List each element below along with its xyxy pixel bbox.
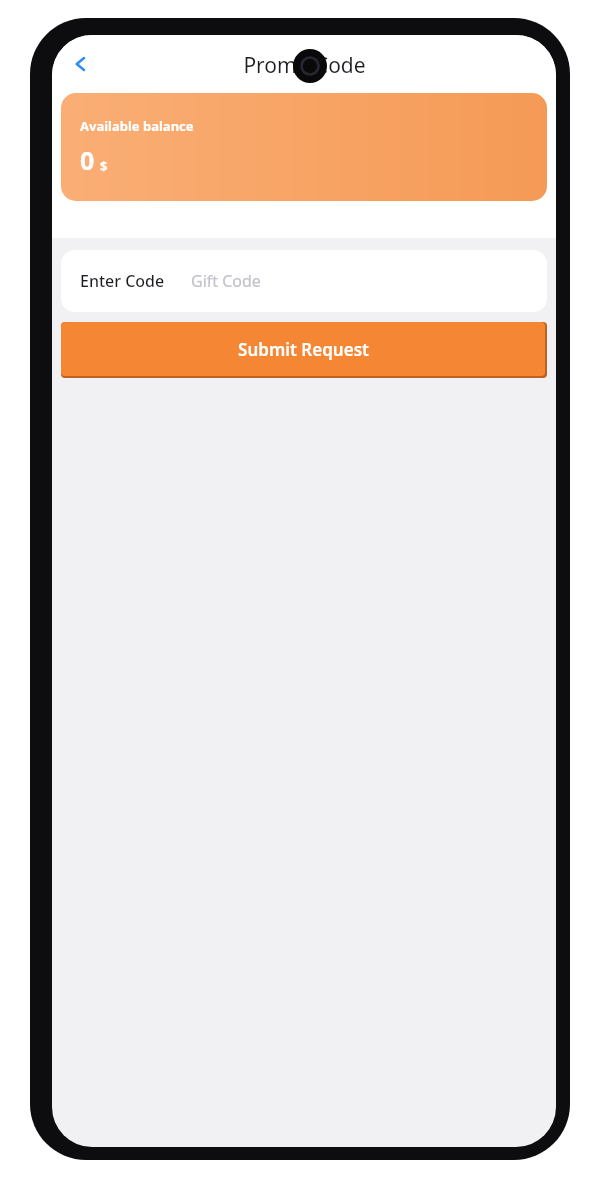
staticText: $ xyxy=(100,157,108,175)
button[interactable]: Enter Code xyxy=(61,250,547,312)
button[interactable]: Submit Request xyxy=(61,322,547,378)
staticText: 0 xyxy=(80,143,95,177)
staticText: Submit Request xyxy=(238,338,369,361)
button[interactable]: Back xyxy=(58,42,102,86)
staticText: Available balance xyxy=(80,117,194,135)
staticText: Gift Code xyxy=(191,270,261,292)
button[interactable]: Available balance xyxy=(61,93,547,201)
staticText: Promo Code xyxy=(243,51,366,80)
staticText: Enter Code xyxy=(80,270,165,292)
